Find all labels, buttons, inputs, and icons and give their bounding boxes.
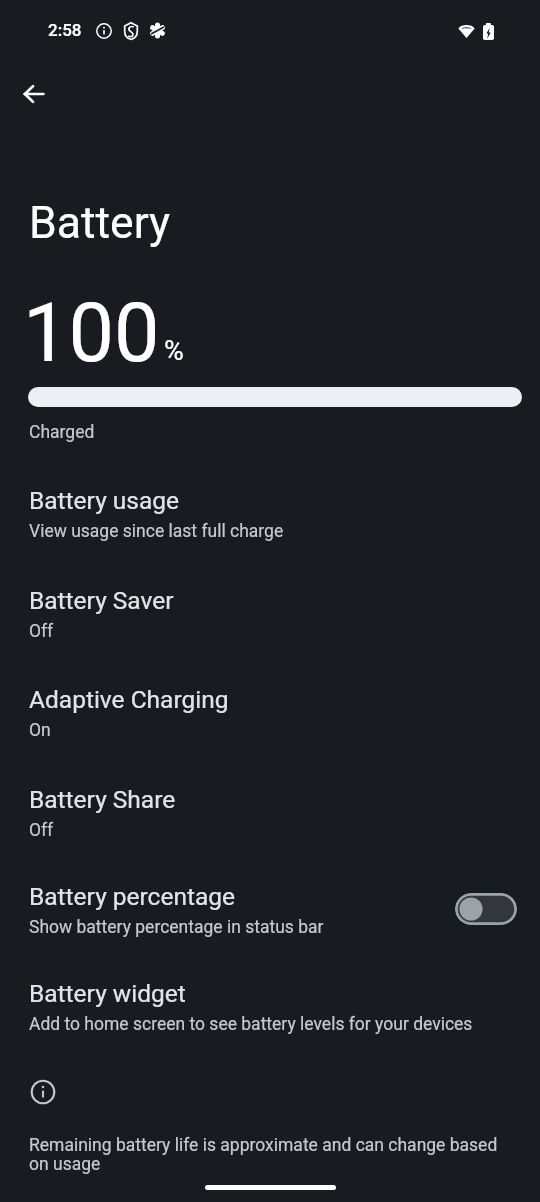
staticText: Adaptive Charging	[29, 685, 229, 714]
staticText: Battery widget	[29, 979, 186, 1008]
staticText: Remaining battery life is approximate an…	[29, 1135, 507, 1174]
staticText: Battery Saver	[29, 586, 174, 615]
button[interactable]: Navigate up	[9, 69, 59, 119]
staticText: 2:58	[48, 20, 82, 40]
staticText: On	[29, 720, 51, 741]
staticText: Add to home screen to see battery levels…	[29, 1014, 473, 1035]
button[interactable]: More information	[30, 1079, 56, 1105]
button[interactable]: Battery widget	[0, 959, 540, 1037]
staticText: Off	[29, 621, 54, 642]
button[interactable]: Adaptive Charging	[0, 665, 540, 743]
staticText: %	[164, 335, 184, 367]
button[interactable]: Battery percentage	[0, 862, 540, 940]
staticText: Battery percentage	[29, 882, 236, 911]
staticText: Battery Share	[29, 785, 176, 814]
button[interactable]: Battery usage	[0, 466, 540, 544]
staticText: Show battery percentage in status bar	[29, 917, 324, 938]
staticText: Off	[29, 820, 54, 841]
staticText: Charged	[29, 422, 95, 443]
staticText: Battery usage	[29, 486, 180, 515]
staticText: View usage since last full charge	[29, 521, 284, 542]
button[interactable]: Battery Saver	[0, 566, 540, 644]
button[interactable]: Toggle Battery percentage	[455, 893, 517, 925]
staticText: 100	[23, 286, 160, 381]
button[interactable]: Battery Share	[0, 765, 540, 843]
staticText: Battery	[29, 197, 171, 249]
